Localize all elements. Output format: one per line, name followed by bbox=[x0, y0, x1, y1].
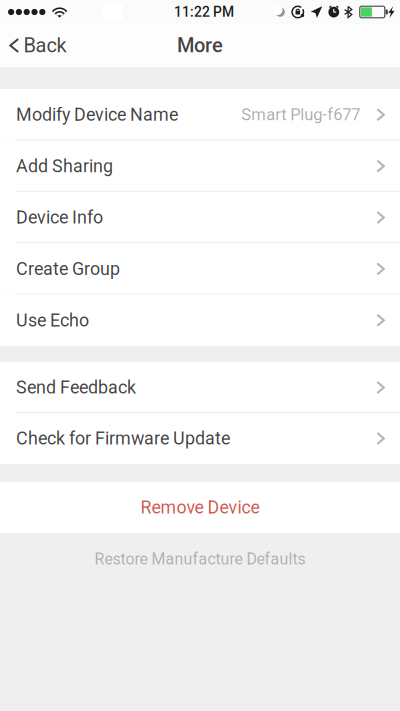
staticText: Check for Firmware Update bbox=[16, 428, 230, 449]
button[interactable]: Use Echo bbox=[0, 295, 400, 346]
staticText: Back bbox=[23, 34, 66, 57]
staticText: Smart Plug-f677 bbox=[241, 105, 360, 124]
button[interactable]: Restore Manufacture Defaults bbox=[0, 539, 400, 579]
button[interactable]: Back bbox=[0, 28, 78, 63]
staticText: Create Group bbox=[16, 258, 120, 279]
staticText: Device Info bbox=[16, 207, 103, 228]
staticText: 11:22 PM bbox=[174, 4, 234, 20]
staticText: Send Feedback bbox=[16, 377, 136, 398]
button[interactable]: Modify Device Name bbox=[0, 89, 400, 140]
staticText: More bbox=[177, 34, 223, 57]
staticText: Remove Device bbox=[140, 497, 259, 518]
button[interactable]: Add Sharing bbox=[0, 140, 400, 192]
staticText: Restore Manufacture Defaults bbox=[94, 550, 305, 568]
button[interactable]: Send Feedback bbox=[0, 362, 400, 413]
staticText: Add Sharing bbox=[16, 156, 113, 176]
button[interactable]: Create Group bbox=[0, 243, 400, 295]
button[interactable]: Remove Device bbox=[0, 482, 400, 533]
button[interactable]: Device Info bbox=[0, 192, 400, 243]
button[interactable]: Check for Firmware Update bbox=[0, 413, 400, 464]
staticText: Use Echo bbox=[16, 310, 89, 331]
staticText: Modify Device Name bbox=[16, 104, 178, 125]
